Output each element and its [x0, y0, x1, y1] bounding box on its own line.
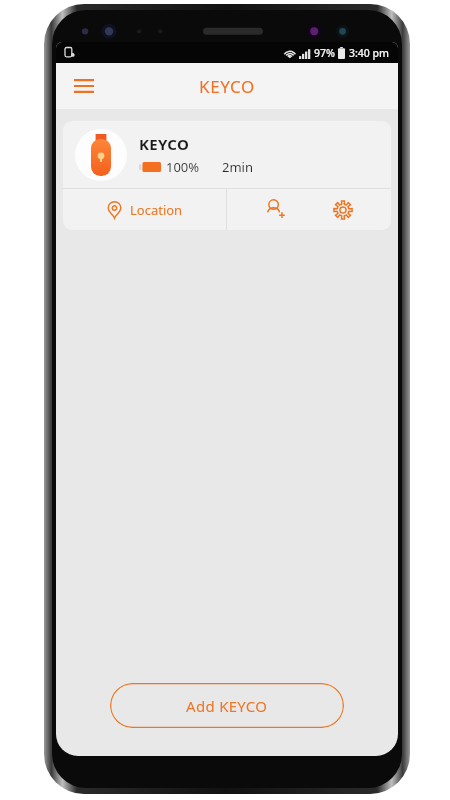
- button[interactable]: Open navigation menu: [66, 68, 102, 104]
- staticText: Location: [130, 201, 183, 219]
- button[interactable]: Device settings: [323, 190, 363, 230]
- button[interactable]: Share device with user: [255, 190, 295, 230]
- staticText: KEYCO: [139, 134, 190, 154]
- button[interactable]: Location: [63, 189, 226, 230]
- staticText: KEYCO: [199, 75, 255, 98]
- staticText: 100%: [166, 158, 200, 176]
- staticText: Add KEYCO: [186, 696, 268, 716]
- button[interactable]: KEYCO: [63, 121, 391, 188]
- button[interactable]: Add KEYCO: [110, 683, 344, 728]
- staticText: 97%: [314, 46, 335, 60]
- staticText: 3:40 pm: [349, 46, 390, 60]
- staticText: 2min: [222, 158, 253, 176]
